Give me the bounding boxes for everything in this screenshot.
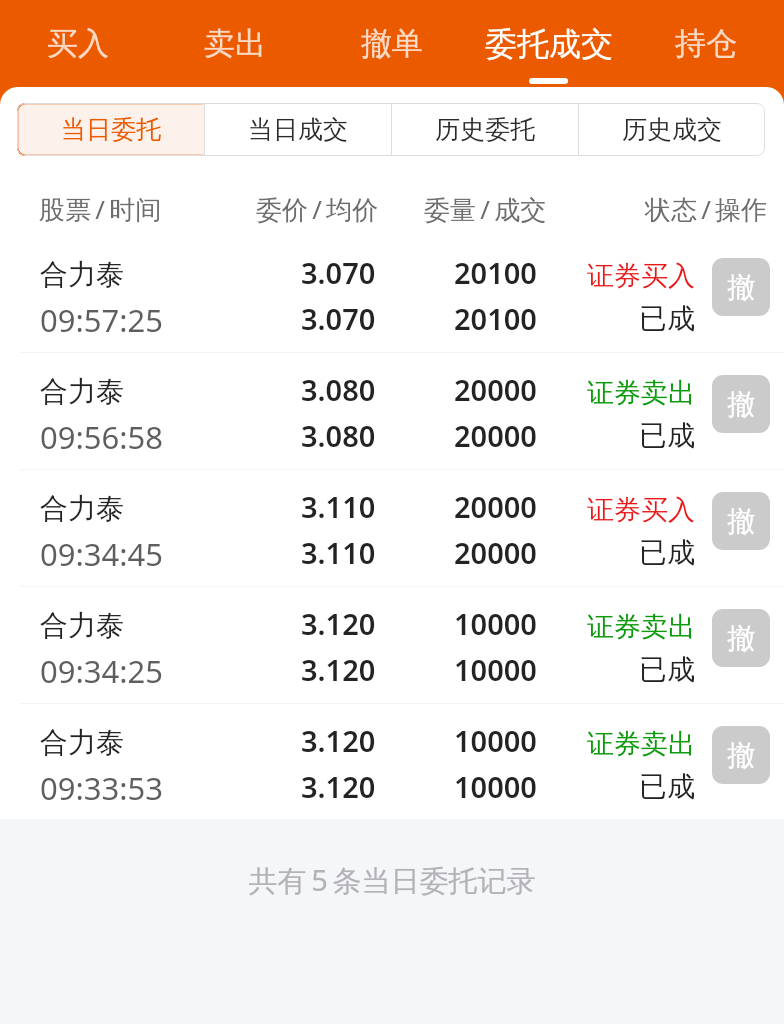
staticText: 合力泰 (40, 257, 124, 292)
staticText: 持仓 (675, 24, 737, 63)
button[interactable]: 历史委托 (392, 103, 578, 156)
staticText: 撤 (727, 504, 755, 539)
button[interactable]: 撤单 Cancel order (712, 258, 770, 316)
button[interactable]: 撤单 Cancel order (712, 726, 770, 784)
staticText: 3.080 (301, 370, 376, 409)
staticText: 已成 (639, 535, 695, 570)
button[interactable]: 当日成交 (205, 103, 391, 156)
staticText: 合力泰 (40, 491, 124, 526)
staticText: 合力泰 (40, 725, 124, 760)
staticText: 委价 / 均价 (256, 191, 379, 227)
staticText: 合力泰 (40, 374, 124, 409)
staticText: 3.110 (301, 487, 376, 526)
button[interactable]: 撤单 Cancel order (712, 609, 770, 667)
staticText: 撤 (727, 387, 755, 422)
staticText: 09:34:25 (40, 650, 164, 692)
staticText: 09:56:58 (40, 416, 164, 458)
staticText: 3.070 (301, 253, 376, 292)
button[interactable]: 持仓 (627, 0, 784, 87)
staticText: 已成 (639, 418, 695, 453)
button[interactable]: 合力泰 (0, 352, 784, 469)
staticText: 20100 (454, 299, 537, 338)
staticText: 证券买入 (587, 493, 695, 527)
staticText: 已成 (639, 301, 695, 336)
staticText: 当日成交 (248, 114, 348, 145)
staticText: 3.070 (301, 299, 376, 338)
staticText: 共有 5 条当日委托记录 (0, 860, 784, 900)
staticText: 09:57:25 (40, 299, 164, 341)
staticText: 10000 (454, 721, 537, 760)
button[interactable]: 委托成交 (470, 0, 627, 87)
staticText: 3.110 (301, 533, 376, 572)
button[interactable]: 合力泰 (0, 586, 784, 703)
button[interactable]: 买入 (0, 0, 156, 87)
staticText: 3.080 (301, 416, 376, 455)
staticText: 10000 (454, 604, 537, 643)
button[interactable]: 合力泰 (0, 703, 784, 819)
staticText: 当日委托 (61, 114, 161, 145)
staticText: 已成 (639, 769, 695, 804)
button[interactable]: 卖出 (156, 0, 313, 87)
button[interactable]: 当日委托 (17, 103, 204, 156)
staticText: 20100 (454, 253, 537, 292)
staticText: 10000 (454, 767, 537, 806)
staticText: 20000 (454, 533, 537, 572)
staticText: 09:33:53 (40, 767, 164, 809)
staticText: 09:34:45 (40, 533, 164, 575)
staticText: 20000 (454, 370, 537, 409)
staticText: 10000 (454, 650, 537, 689)
button[interactable]: 合力泰 (0, 235, 784, 352)
staticText: 20000 (454, 416, 537, 455)
button[interactable]: 撤单 (313, 0, 470, 87)
staticText: 证券买入 (587, 259, 695, 293)
staticText: 撤 (727, 621, 755, 656)
staticText: 合力泰 (40, 608, 124, 643)
staticText: 3.120 (301, 604, 376, 643)
staticText: 20000 (454, 487, 537, 526)
button[interactable]: 合力泰 (0, 469, 784, 586)
staticText: 委托成交 (485, 24, 613, 64)
staticText: 买入 (47, 24, 109, 63)
staticText: 委量 / 成交 (424, 191, 547, 227)
staticText: 3.120 (301, 767, 376, 806)
staticText: 3.120 (301, 721, 376, 760)
button[interactable]: 历史成交 (579, 103, 765, 156)
staticText: 撤 (727, 270, 755, 305)
staticText: 证券卖出 (587, 376, 695, 410)
staticText: 3.120 (301, 650, 376, 689)
staticText: 撤单 (361, 24, 423, 63)
staticText: 证券卖出 (587, 727, 695, 761)
button[interactable]: 撤单 Cancel order (712, 492, 770, 550)
button[interactable]: 撤单 Cancel order (712, 375, 770, 433)
staticText: 股票 / 时间 (39, 191, 162, 227)
staticText: 撤 (727, 738, 755, 773)
staticText: 历史成交 (622, 114, 722, 145)
staticText: 证券卖出 (587, 610, 695, 644)
staticText: 状态 / 操作 (645, 191, 768, 227)
staticText: 已成 (639, 652, 695, 687)
staticText: 卖出 (204, 24, 266, 63)
staticText: 历史委托 (435, 114, 535, 145)
